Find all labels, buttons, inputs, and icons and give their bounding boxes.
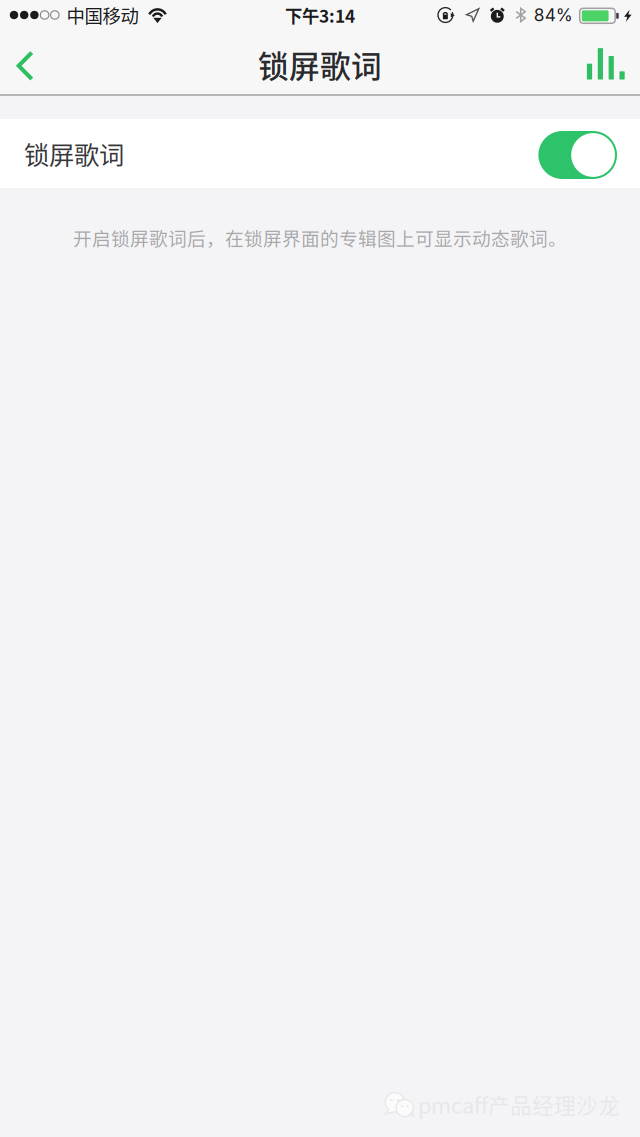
staticText: 中国移动	[66, 2, 138, 28]
button[interactable]: 返回	[0, 41, 46, 95]
staticText: 开启锁屏歌词后，在锁屏界面的专辑图上可显示动态歌词。	[73, 224, 567, 251]
button[interactable]: 音效	[584, 41, 630, 95]
button[interactable]: 锁屏歌词	[0, 119, 640, 188]
staticText: 锁屏歌词	[258, 42, 382, 87]
staticText: 84%	[534, 4, 573, 25]
staticText: 下午3:14	[285, 3, 355, 28]
staticText: pmcaff产品经理沙龙	[418, 1088, 620, 1120]
staticText: 锁屏歌词	[24, 135, 124, 172]
